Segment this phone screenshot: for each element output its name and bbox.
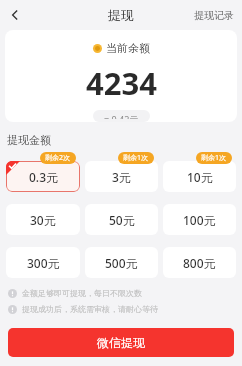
staticText: 剩余1次 (123, 153, 149, 163)
staticText: 4234 (86, 62, 157, 104)
staticText: 50元 (109, 212, 135, 228)
button[interactable]: 30元 (6, 204, 80, 235)
button[interactable]: 提现记录 (186, 3, 242, 28)
staticText: 800元 (183, 255, 216, 271)
staticText: 金额足够即可提现，每日不限次数 (22, 288, 142, 298)
staticText: 当前余额 (106, 41, 150, 55)
button[interactable]: Back (0, 0, 30, 30)
button[interactable]: 50元 (85, 204, 158, 235)
staticText: 提现金额 (7, 133, 51, 147)
staticText: 100元 (183, 212, 216, 228)
staticText: = 0.42元 (104, 113, 139, 119)
staticText: 300元 (27, 255, 60, 271)
staticText: 微信提现 (97, 335, 145, 350)
button[interactable]: 300元 (6, 247, 80, 278)
button[interactable]: 微信提现 (8, 328, 234, 357)
button[interactable]: 500元 (85, 247, 158, 278)
staticText: 剩余2次 (45, 153, 71, 163)
staticText: 提现记录 (194, 9, 234, 22)
button[interactable]: 100元 (163, 204, 236, 235)
staticText: 500元 (105, 255, 138, 271)
button[interactable]: 800元 (163, 247, 236, 278)
staticText: 提现 (108, 7, 134, 23)
button[interactable]: 3元 (85, 161, 158, 192)
staticText: 3元 (112, 169, 131, 185)
button[interactable]: 10元 (163, 161, 236, 192)
staticText: 30元 (30, 212, 56, 228)
staticText: 10元 (187, 169, 213, 185)
staticText: 0.3元 (29, 169, 58, 185)
button[interactable]: 0.3元 (6, 161, 80, 192)
staticText: 提现成功后，系统需审核，请耐心等待 (22, 304, 158, 314)
staticText: 剩余1次 (201, 153, 227, 163)
